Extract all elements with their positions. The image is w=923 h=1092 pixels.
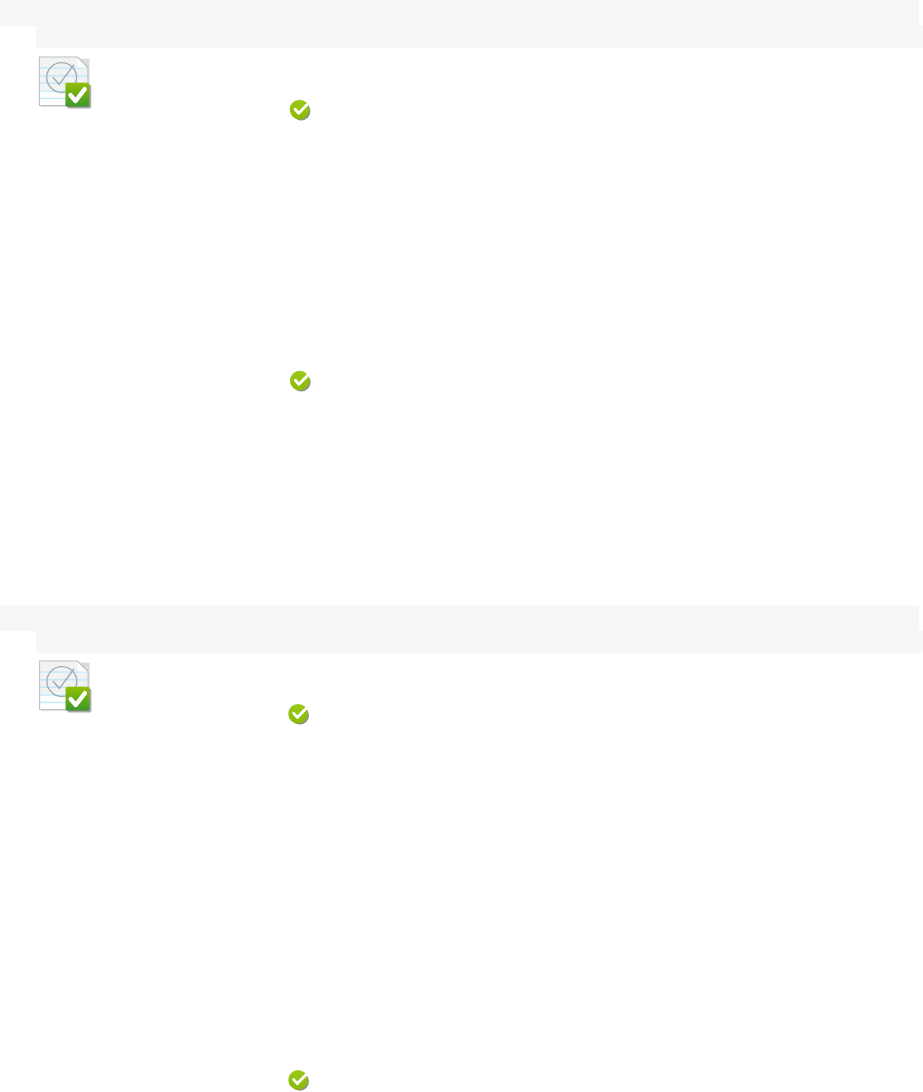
button[interactable]: Approved document <box>39 661 90 712</box>
button[interactable]: Approved <box>288 1070 309 1091</box>
button[interactable]: Approved <box>289 99 310 120</box>
button[interactable]: Selected tab <box>0 0 36 48</box>
button[interactable]: Approved <box>288 703 309 724</box>
button[interactable]: Approved document <box>39 57 90 108</box>
button[interactable]: Selected tab <box>0 605 36 653</box>
button[interactable]: Approved <box>289 370 310 391</box>
